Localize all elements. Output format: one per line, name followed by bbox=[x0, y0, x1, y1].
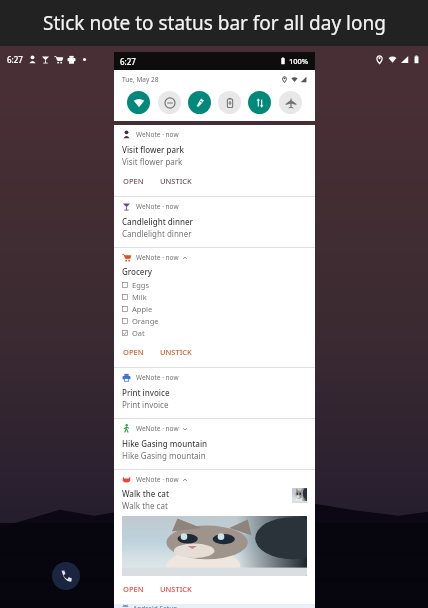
staticText: Candlelight dinner bbox=[122, 216, 193, 227]
staticText: WeNote · now bbox=[136, 130, 179, 139]
staticText: Hike Gasing mountain bbox=[122, 450, 206, 461]
button[interactable]: WeNote · now bbox=[114, 470, 315, 604]
staticText: WeNote · now bbox=[136, 253, 179, 262]
staticText: Apple bbox=[132, 304, 153, 314]
staticText: UNSTICK bbox=[160, 176, 192, 186]
button[interactable]: WeNote · now bbox=[114, 368, 315, 418]
staticText: Android Setup bbox=[133, 604, 178, 608]
button[interactable]: Battery saver bbox=[218, 91, 241, 114]
staticText: OPEN bbox=[123, 347, 144, 357]
staticText: Oat bbox=[132, 328, 145, 338]
staticText: Candlelight dinner bbox=[122, 228, 192, 239]
button[interactable]: Flashlight bbox=[188, 91, 211, 114]
button[interactable]: OPEN bbox=[122, 174, 145, 188]
staticText: Grocery bbox=[122, 266, 153, 277]
staticText: Milk bbox=[132, 292, 147, 302]
staticText: 100% bbox=[289, 56, 309, 66]
button[interactable]: OPEN bbox=[122, 582, 145, 596]
button[interactable]: OPEN bbox=[122, 345, 145, 359]
button[interactable]: WeNote · now bbox=[114, 197, 315, 247]
staticText: Tue, May 28 bbox=[122, 75, 159, 84]
button[interactable]: UNSTICK bbox=[159, 174, 193, 188]
staticText: 6:27 bbox=[7, 54, 23, 65]
staticText: Eggs bbox=[132, 280, 149, 290]
staticText: Visit flower park bbox=[122, 144, 184, 155]
staticText: Walk the cat bbox=[122, 488, 169, 499]
staticText: Hike Gasing mountain bbox=[122, 438, 208, 449]
staticText: WeNote · now bbox=[136, 202, 179, 211]
button[interactable]: UNSTICK bbox=[159, 582, 193, 596]
button[interactable]: Phone bbox=[52, 562, 80, 590]
staticText: WeNote · now bbox=[136, 373, 179, 382]
staticText: Print invoice bbox=[122, 387, 170, 398]
button[interactable]: Mobile data bbox=[248, 91, 271, 114]
staticText: WeNote · now bbox=[136, 424, 179, 433]
button[interactable]: Wi-Fi bbox=[127, 91, 150, 114]
staticText: Visit flower park bbox=[122, 156, 183, 167]
button[interactable]: WeNote · now bbox=[114, 125, 315, 196]
button[interactable]: WeNote · now bbox=[114, 248, 315, 367]
button[interactable]: WeNote · now bbox=[114, 419, 315, 469]
staticText: Print invoice bbox=[122, 399, 169, 410]
button[interactable]: Do not disturb bbox=[158, 91, 181, 114]
staticText: OPEN bbox=[123, 584, 144, 594]
button[interactable]: UNSTICK bbox=[159, 345, 193, 359]
button[interactable]: Airplane mode bbox=[279, 91, 302, 114]
staticText: UNSTICK bbox=[160, 584, 192, 594]
staticText: Walk the cat bbox=[122, 500, 168, 511]
staticText: Stick note to status bar for all day lon… bbox=[43, 10, 386, 36]
staticText: WeNote · now bbox=[136, 475, 179, 484]
staticText: UNSTICK bbox=[160, 347, 192, 357]
staticText: Orange bbox=[132, 316, 159, 326]
staticText: 6:27 bbox=[120, 56, 136, 67]
staticText: OPEN bbox=[123, 176, 144, 186]
